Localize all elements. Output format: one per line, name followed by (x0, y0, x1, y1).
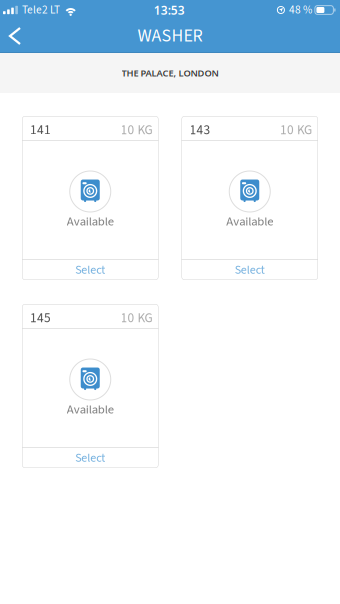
staticText: 13:53 (154, 2, 185, 18)
staticText: THE PALACE, LONDON (121, 67, 218, 79)
button[interactable]: Back (0, 22, 32, 50)
staticText: Available (226, 212, 273, 230)
staticText: 10 KG (280, 120, 312, 139)
staticText: Select (75, 261, 105, 279)
button[interactable]: Select (22, 260, 158, 280)
button[interactable]: Select (181, 260, 318, 280)
staticText: 145 (30, 308, 51, 327)
staticText: WASHER (137, 23, 202, 49)
staticText: Select (75, 449, 105, 467)
staticText: 141 (30, 120, 51, 139)
staticText: 10 KG (120, 308, 152, 327)
staticText: 143 (189, 120, 210, 139)
staticText: 48 % (289, 2, 312, 18)
staticText: Tele2 LT (22, 2, 60, 18)
staticText: 10 KG (120, 120, 152, 139)
staticText: Select (235, 261, 265, 279)
button[interactable]: Select (22, 448, 158, 468)
staticText: Available (67, 400, 114, 418)
staticText: Available (67, 212, 114, 230)
